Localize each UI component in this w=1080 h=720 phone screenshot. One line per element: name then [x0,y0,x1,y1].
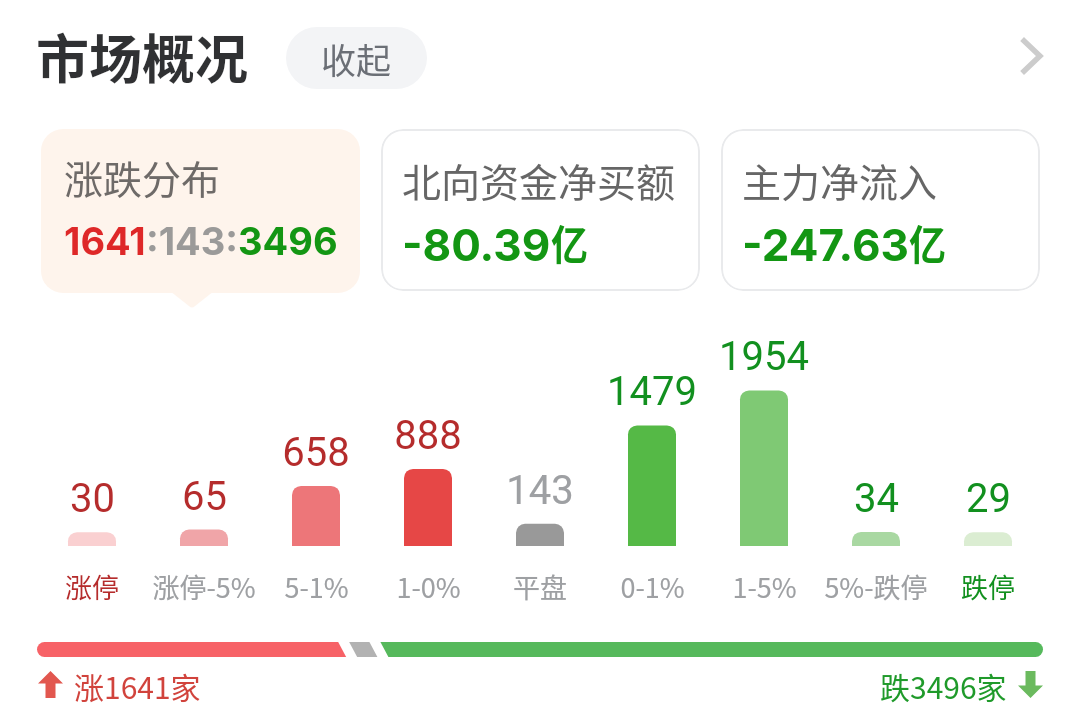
button[interactable]: 跌3496家 [880,664,1043,704]
staticText: 涨停-5% [152,567,256,606]
button[interactable]: 1-5% 1954 [708,333,820,601]
staticText: :143: [146,218,238,264]
staticText: 跌停 [961,567,1015,606]
button[interactable]: 查看更多 [995,19,1069,93]
button[interactable]: 北向资金净买额 [381,129,700,291]
button[interactable]: 涨跌分布 [41,129,360,293]
staticText: -247.63 [742,218,909,271]
other: 上涨 [38,671,63,698]
button[interactable]: 平盘 143 [484,467,596,601]
button[interactable]: 主力净流入 [721,129,1040,291]
staticText: 0-1% [620,567,685,606]
staticText: 平盘 [513,567,567,606]
button[interactable]: 跌停 29 [932,475,1044,601]
button[interactable]: 涨停-5% 65 [148,473,260,601]
staticText: 北向资金净买额 [402,152,676,208]
staticText: 143 [506,467,574,514]
staticText: 涨1641家 [74,664,201,704]
button[interactable]: 5%-跌停 34 [820,475,932,601]
staticText: 30 [70,475,115,522]
staticText: 1954 [719,333,809,380]
button[interactable]: 上涨 [38,664,201,704]
button[interactable]: 5-1% 658 [260,429,372,601]
staticText: 5%-跌停 [824,567,928,606]
staticText: 888 [394,412,462,459]
staticText: 收起 [321,33,392,84]
other: 下跌 [1018,671,1043,698]
staticText: 65 [182,473,227,520]
staticText: 1641 [64,218,146,264]
staticText: 658 [282,429,350,476]
button[interactable]: 收起 [286,27,427,89]
staticText: 29 [966,475,1011,522]
staticText: 34 [854,475,899,522]
staticText: 市场概况 [36,18,248,95]
button[interactable]: 涨停 30 [36,475,148,601]
staticText: 涨跌分布 [64,149,221,205]
staticText: 主力净流入 [742,152,938,208]
staticText: 涨停 [65,567,119,606]
staticText: 亿 [909,212,946,271]
staticText: 5-1% [284,567,349,606]
staticText: 1-0% [396,567,461,606]
button[interactable]: 1-0% 888 [372,412,484,601]
staticText: 亿 [551,212,588,271]
staticText: 3496 [238,218,338,264]
button[interactable]: 0-1% 1479 [596,368,708,601]
staticText: 1-5% [732,567,797,606]
staticText: 跌3496家 [880,664,1007,704]
staticText: 1479 [607,368,697,415]
staticText: -80.39 [402,218,551,271]
